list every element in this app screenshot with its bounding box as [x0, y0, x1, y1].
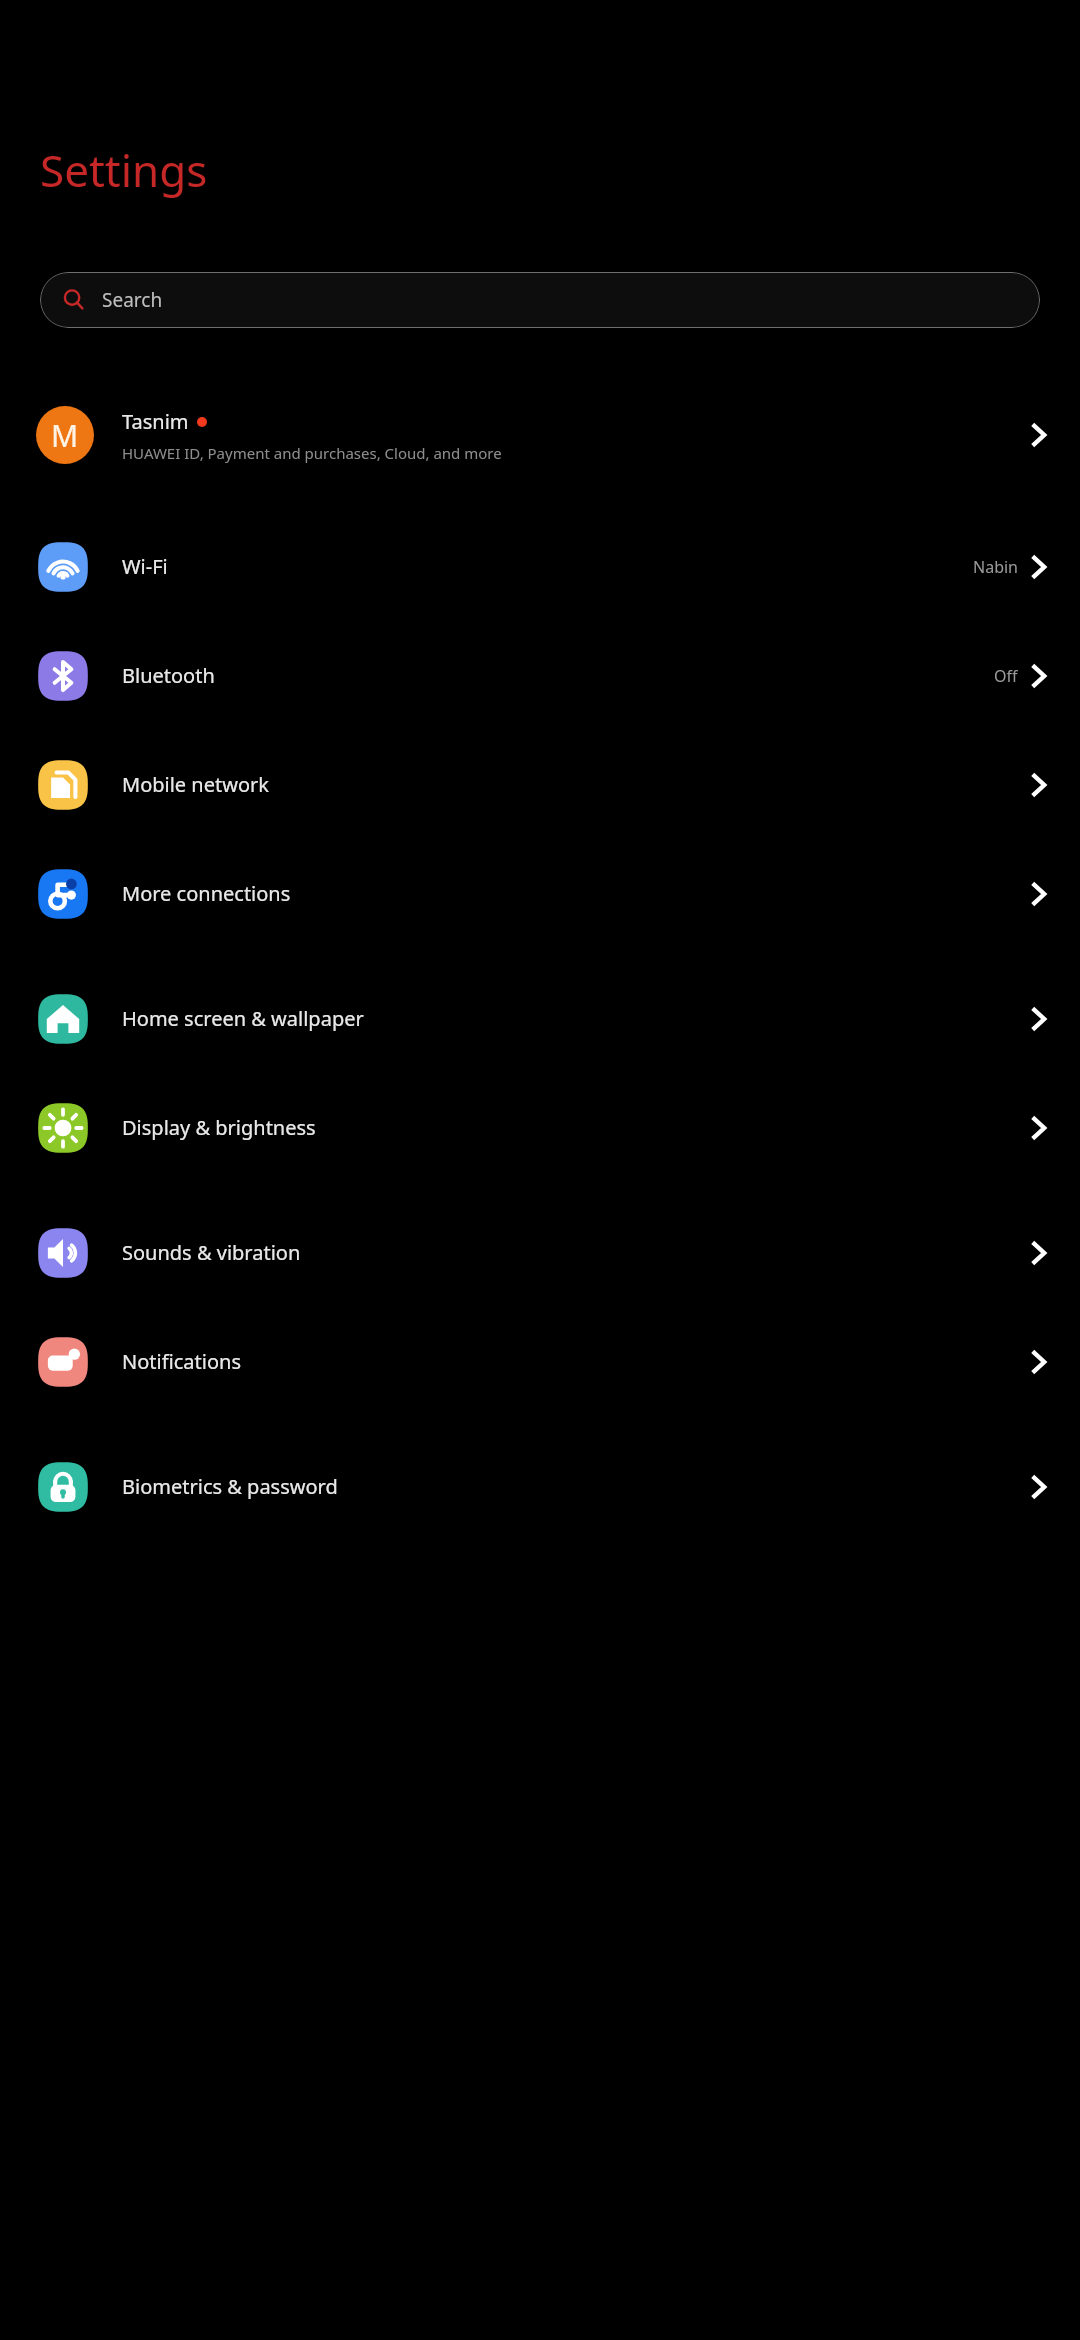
staticText: Nabin: [973, 556, 1018, 578]
staticText: Biometrics & password: [122, 1473, 1026, 1500]
button[interactable]: Sounds & vibration: [0, 1198, 1080, 1307]
button[interactable]: Mobile network: [0, 730, 1080, 839]
staticText: Home screen & wallpaper: [122, 1005, 1026, 1032]
button[interactable]: Search: [40, 272, 1040, 328]
button[interactable]: Display & brightness: [0, 1073, 1080, 1182]
button[interactable]: M: [0, 376, 1080, 494]
staticText: Bluetooth: [122, 662, 994, 689]
staticText: Tasnim: [122, 408, 189, 435]
button[interactable]: Biometrics & password: [0, 1432, 1080, 1541]
staticText: HUAWEI ID, Payment and purchases, Cloud,…: [122, 443, 502, 463]
staticText: Display & brightness: [122, 1114, 1026, 1141]
staticText: Sounds & vibration: [122, 1239, 1026, 1266]
button[interactable]: Notifications: [0, 1307, 1080, 1416]
button[interactable]: More connections: [0, 839, 1080, 948]
staticText: Settings: [40, 140, 208, 200]
staticText: Wi-Fi: [122, 553, 973, 580]
staticText: M: [51, 415, 79, 456]
staticText: More connections: [122, 880, 1026, 907]
button[interactable]: Home screen & wallpaper: [0, 964, 1080, 1073]
staticText: Mobile network: [122, 771, 1026, 798]
staticText: Off: [994, 665, 1018, 687]
staticText: Notifications: [122, 1348, 1026, 1375]
staticText: Search: [102, 287, 163, 313]
button[interactable]: Bluetooth: [0, 621, 1080, 730]
button[interactable]: Wi-Fi: [0, 512, 1080, 621]
